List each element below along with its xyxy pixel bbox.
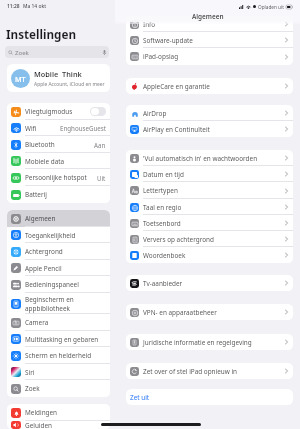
staticText: Persoonlijke hotspot	[25, 173, 97, 182]
staticText: Opladen uit	[258, 4, 284, 10]
staticText: Lettertypen	[143, 186, 285, 195]
staticText: Mobiele data	[25, 157, 106, 166]
button[interactable]: Beginscherm en appbibliotheek	[7, 293, 110, 314]
staticText: Software-update	[143, 36, 285, 45]
button[interactable]: Wifi	[7, 120, 110, 136]
button[interactable]: Multitasking en gebaren	[7, 331, 110, 347]
button[interactable]: Siri	[7, 364, 110, 380]
button[interactable]: Datum en tijd	[126, 166, 293, 182]
staticText: Aan	[94, 141, 106, 149]
button[interactable]: Bluetooth	[7, 136, 110, 153]
staticText: Algemeen	[25, 214, 106, 223]
staticText: AirDrop	[143, 109, 285, 118]
button[interactable]: Apple Pencil	[7, 260, 110, 276]
button[interactable]: AppleCare en garantie	[126, 78, 293, 94]
button[interactable]: Woordenboek	[126, 247, 293, 263]
staticText: Algemeen	[192, 12, 224, 21]
staticText: Instellingen	[6, 26, 77, 42]
staticText: Uit	[97, 174, 106, 182]
staticText: AirPlay en Continuïteit	[143, 125, 285, 134]
button[interactable]: Tv-aanbieder	[126, 275, 293, 291]
staticText: 11:28	[7, 3, 20, 10]
button[interactable]: Persoonlijke hotspot	[7, 169, 110, 186]
staticText: Zet over of stel iPad opnieuw in	[143, 367, 285, 376]
staticText: Mobile Think	[34, 69, 82, 79]
staticText: Tv-aanbieder	[143, 279, 285, 288]
staticText: Zoek	[25, 384, 106, 393]
staticText: Achtergrond	[25, 247, 106, 256]
staticText: Scherm en helderheid	[25, 351, 106, 360]
button[interactable]: Toetsenbord	[126, 215, 293, 231]
staticText: Zoek	[15, 48, 29, 56]
button[interactable]: MT	[7, 64, 110, 92]
button[interactable]: Mobiele data	[7, 153, 110, 169]
button[interactable]: iPad-opslag	[126, 48, 293, 65]
button[interactable]: AirDrop	[126, 105, 293, 121]
staticText: Apple Account, iCloud en meer	[34, 81, 105, 88]
button[interactable]: Taal en regio	[126, 199, 293, 215]
staticText: Toegankelijkheid	[25, 231, 106, 240]
button[interactable]: Zoek	[5, 46, 109, 58]
staticText: Batterij	[25, 190, 106, 199]
staticText: Meldingen	[25, 408, 106, 417]
staticText: AppleCare en garantie	[143, 82, 285, 91]
button[interactable]: Scherm en helderheid	[7, 347, 110, 364]
button[interactable]: Bedieningspaneel	[7, 276, 110, 293]
staticText: Multitasking en gebaren	[25, 335, 106, 344]
staticText: Toetsenbord	[143, 219, 285, 228]
staticText: Ververs op achtergrond	[143, 235, 285, 244]
staticText: Beginscherm en appbibliotheek	[25, 295, 106, 312]
staticText: VPN- en apparaatbeheer	[143, 308, 285, 317]
button[interactable]: Lettertypen	[126, 182, 293, 199]
staticText: iPad-opslag	[143, 52, 285, 61]
button[interactable]: Zet uit	[126, 389, 293, 405]
button[interactable]: Zet over of stel iPad opnieuw in	[126, 363, 293, 379]
button[interactable]: 'Vul automatisch in' en wachtwoorden	[126, 150, 293, 166]
button[interactable]: Geluiden	[7, 421, 110, 429]
staticText: Ma 14 okt	[23, 3, 47, 10]
staticText: Bedieningspaneel	[25, 280, 106, 289]
staticText: EnghouseGuest	[60, 124, 106, 132]
staticText: Siri	[25, 368, 106, 377]
button[interactable]: Vliegtuigmodus aan-uitschakelaar	[90, 107, 106, 116]
staticText: Camera	[25, 318, 106, 327]
button[interactable]: Achtergrond	[7, 243, 110, 260]
button[interactable]: Juridische informatie en regelgeving	[126, 334, 293, 350]
button[interactable]: Ververs op achtergrond	[126, 231, 293, 247]
staticText: MT	[15, 74, 26, 84]
button[interactable]: VPN- en apparaatbeheer	[126, 304, 293, 320]
staticText: Bluetooth	[25, 140, 94, 149]
staticText: Juridische informatie en regelgeving	[143, 338, 285, 347]
staticText: Vliegtuigmodus	[25, 107, 90, 116]
button[interactable]: Info	[126, 16, 293, 32]
button[interactable]: Algemeen	[7, 210, 110, 227]
staticText: Datum en tijd	[143, 170, 285, 179]
staticText: Taal en regio	[143, 203, 285, 212]
staticText: Wifi	[25, 124, 60, 133]
staticText: Woordenboek	[143, 251, 285, 260]
button[interactable]: Batterij	[7, 186, 110, 203]
button[interactable]: Vliegtuigmodus	[7, 103, 110, 120]
button[interactable]: Camera	[7, 314, 110, 331]
button[interactable]: Toegankelijkheid	[7, 227, 110, 243]
staticText: Apple Pencil	[25, 264, 106, 273]
staticText: 'Vul automatisch in' en wachtwoorden	[143, 154, 285, 163]
button[interactable]: Software-update	[126, 32, 293, 48]
staticText: Zet uit	[130, 393, 150, 402]
staticText: Geluiden	[25, 421, 106, 429]
button[interactable]: AirPlay en Continuïteit	[126, 121, 293, 137]
staticText: Info	[143, 20, 285, 29]
button[interactable]: Meldingen	[7, 404, 110, 421]
button[interactable]: Zoek	[7, 380, 110, 397]
